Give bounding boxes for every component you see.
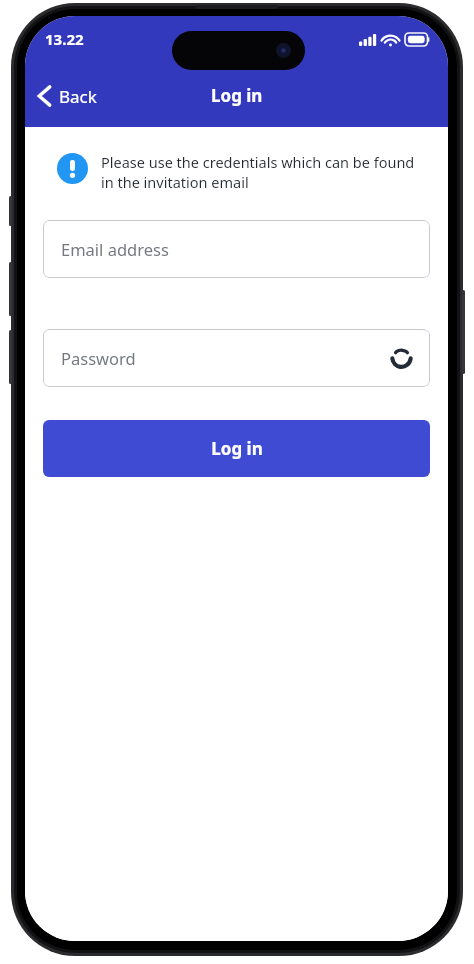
staticText: 13.22 bbox=[45, 29, 84, 49]
button[interactable]: Email address bbox=[43, 220, 430, 278]
button[interactable]: Log in bbox=[43, 420, 430, 477]
button[interactable]: Back bbox=[25, 72, 107, 120]
button[interactable]: Show password bbox=[386, 343, 416, 373]
staticText: Email address bbox=[61, 238, 169, 260]
staticText: Please use the credentials which can be … bbox=[101, 152, 426, 193]
staticText: Password bbox=[61, 347, 136, 369]
staticText: Back bbox=[59, 85, 97, 108]
staticText: Log in bbox=[211, 84, 263, 107]
button[interactable]: Password bbox=[43, 329, 430, 387]
staticText: Log in bbox=[211, 437, 263, 460]
